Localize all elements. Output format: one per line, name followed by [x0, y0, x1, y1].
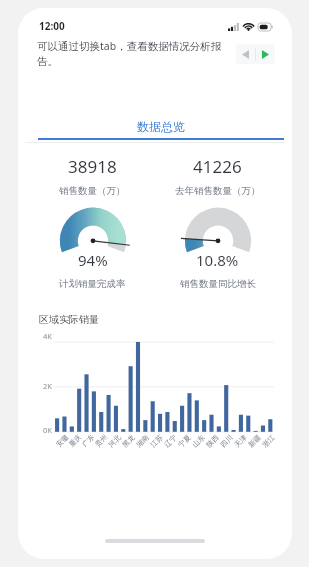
staticText: 10.8% [196, 250, 239, 270]
button[interactable]: 区域实际销量 [30, 305, 280, 475]
button[interactable]: 38918 [30, 147, 280, 298]
staticText: 新疆 [246, 433, 263, 449]
staticText: 重庆 [67, 433, 83, 449]
button[interactable]: Previous [236, 44, 255, 64]
staticText: 河北 [106, 433, 123, 449]
staticText: 4K [43, 331, 52, 341]
staticText: 四川 [218, 433, 235, 449]
staticText: 安徽 [54, 433, 70, 449]
staticText: 陕西 [204, 433, 221, 449]
staticText: 41226 [193, 155, 242, 178]
staticText: 94% [78, 250, 108, 270]
staticText: 贵州 [93, 433, 109, 449]
staticText: 区域实际销量 [39, 313, 99, 326]
button[interactable]: 数据总览 [37, 119, 285, 140]
button[interactable]: Previous [236, 44, 275, 64]
staticText: 去年销售数量（万） [175, 185, 261, 197]
staticText: 广东 [80, 433, 96, 449]
staticText: 销售数量同比增长 [180, 278, 256, 290]
staticText: 江苏 [148, 433, 165, 449]
button[interactable]: Next [256, 44, 275, 64]
staticText: 山东 [190, 433, 207, 449]
staticText: 数据总览 [137, 119, 185, 134]
staticText: 宁夏 [176, 433, 193, 449]
staticText: 销售数量（万） [59, 185, 126, 197]
staticText: 计划销量完成率 [59, 278, 126, 290]
staticText: 湖南 [134, 433, 151, 449]
staticText: 浙江 [260, 433, 277, 449]
staticText: 12:00 [39, 19, 65, 33]
staticText: 2K [43, 381, 52, 391]
staticText: 天津 [232, 433, 249, 449]
staticText: 0K [43, 425, 52, 435]
staticText: 黑龙江 [120, 433, 137, 449]
staticText: 辽宁 [162, 433, 179, 449]
staticText: 38918 [68, 155, 117, 178]
staticText: 可以通过切换tab，查看数据情况分析报告。 [37, 39, 231, 68]
